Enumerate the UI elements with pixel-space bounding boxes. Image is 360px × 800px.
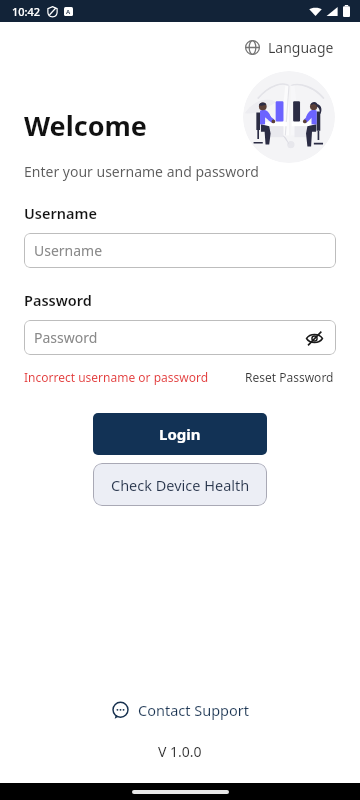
button[interactable]: Username — [24, 233, 336, 268]
staticText: Incorrect username or password — [24, 369, 209, 385]
staticText: Password — [34, 328, 98, 347]
staticText: Check Device Health — [111, 475, 250, 495]
button[interactable]: Contact Support — [106, 696, 255, 724]
staticText: Welcome — [24, 107, 147, 144]
staticText: Login — [159, 424, 201, 444]
staticText: Password — [24, 290, 92, 310]
button[interactable]: Check Device Health — [93, 463, 267, 506]
staticText: Contact Support — [138, 700, 249, 720]
button[interactable]: Show password — [302, 326, 326, 350]
staticText: Username — [24, 203, 97, 223]
staticText: 10:42 — [12, 4, 41, 19]
staticText: Username — [34, 241, 103, 260]
staticText: Reset Password — [245, 369, 334, 385]
staticText: Language — [268, 38, 334, 57]
button[interactable]: Language — [239, 34, 340, 61]
staticText: Enter your username and password — [24, 162, 259, 181]
staticText: A — [66, 8, 71, 16]
button[interactable]: Password — [24, 320, 336, 355]
button[interactable]: Login — [93, 413, 267, 455]
button[interactable]: Reset Password — [243, 367, 336, 387]
staticText: V 1.0.0 — [158, 742, 202, 761]
